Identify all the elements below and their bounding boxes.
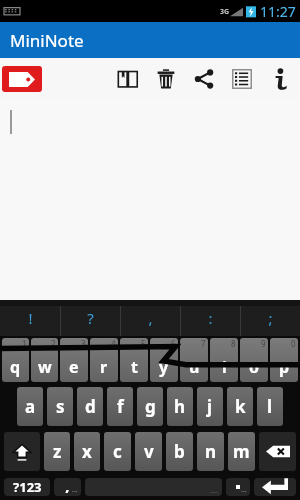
button[interactable]: Delete xyxy=(152,62,180,96)
button[interactable]: f xyxy=(107,387,133,426)
button[interactable]: ! xyxy=(0,300,60,336)
staticText: w xyxy=(38,356,52,378)
button[interactable]: Enter xyxy=(254,478,296,496)
button[interactable]: b xyxy=(166,432,193,471)
staticText: e xyxy=(69,356,79,378)
button[interactable]: List xyxy=(228,62,256,96)
staticText: b xyxy=(174,440,185,463)
staticText: 4 xyxy=(111,338,116,349)
staticText: , xyxy=(148,308,153,328)
staticText: v xyxy=(144,440,154,463)
button[interactable]: Info xyxy=(266,62,294,96)
button[interactable]: n xyxy=(197,432,224,471)
button[interactable]: ?123 xyxy=(4,478,50,496)
staticText: x xyxy=(82,440,92,463)
staticText: t xyxy=(131,356,138,378)
staticText: r xyxy=(100,356,108,378)
button[interactable]: 5 xyxy=(120,338,148,382)
staticText: m xyxy=(233,440,250,463)
staticText: , xyxy=(65,478,70,493)
staticText: 11:27 xyxy=(260,2,296,21)
button[interactable]: m xyxy=(228,432,255,471)
staticText: 9 xyxy=(261,338,266,349)
button[interactable]: Share xyxy=(190,62,218,96)
button[interactable]: 1 xyxy=(2,338,29,382)
button[interactable]: : xyxy=(181,300,240,336)
staticText: 3 xyxy=(81,338,86,349)
button[interactable]: z xyxy=(44,432,70,471)
staticText: 0 xyxy=(291,338,296,349)
staticText: 8 xyxy=(231,338,236,349)
button[interactable]: 8 xyxy=(210,338,238,382)
button[interactable]: 6 xyxy=(150,338,178,382)
button[interactable]: j xyxy=(197,387,223,426)
staticText: l xyxy=(267,395,273,418)
staticText: o xyxy=(249,356,260,378)
staticText: ___ xyxy=(210,486,218,494)
staticText: ... xyxy=(241,485,247,495)
button[interactable]: Tag xyxy=(2,66,42,92)
button[interactable]: a xyxy=(17,387,43,426)
staticText: q xyxy=(10,356,21,378)
staticText: 3G xyxy=(220,7,230,17)
button[interactable]: 2 xyxy=(31,338,58,382)
staticText: d xyxy=(85,395,96,418)
staticText: i xyxy=(222,356,227,378)
staticText: 7 xyxy=(201,338,206,349)
button[interactable]: Shift xyxy=(4,432,40,471)
button[interactable]: c xyxy=(104,432,131,471)
button[interactable]: d xyxy=(77,387,103,426)
staticText: 5 xyxy=(141,338,146,349)
button[interactable]: , xyxy=(54,478,81,496)
staticText: j xyxy=(207,395,213,418)
button[interactable]: 0 xyxy=(270,338,298,382)
staticText: s xyxy=(56,395,65,418)
button[interactable]: 9 xyxy=(240,338,268,382)
staticText: ?123 xyxy=(13,478,42,496)
staticText: : xyxy=(208,308,213,328)
button[interactable]: 4 xyxy=(90,338,118,382)
button[interactable]: Notebook xyxy=(114,62,142,96)
staticText: MiniNote xyxy=(10,29,84,52)
staticText: 2 xyxy=(51,338,56,349)
staticText: 1 xyxy=(22,338,27,349)
button[interactable]: s xyxy=(47,387,73,426)
staticText: ... xyxy=(72,485,78,495)
staticText: u xyxy=(189,356,200,378)
staticText: a xyxy=(25,395,36,418)
staticText: ; xyxy=(268,308,273,328)
button[interactable]: 3 xyxy=(60,338,88,382)
staticText: g xyxy=(145,395,156,418)
button[interactable]: l xyxy=(257,387,283,426)
button[interactable]: , xyxy=(121,300,180,336)
button[interactable]: 7 xyxy=(180,338,208,382)
staticText: k xyxy=(235,395,246,418)
button[interactable]: x xyxy=(74,432,100,471)
staticText: h xyxy=(174,395,186,418)
button[interactable]: k xyxy=(227,387,253,426)
staticText: ? xyxy=(87,308,94,328)
button[interactable]: h xyxy=(167,387,193,426)
button[interactable]: Backspace xyxy=(259,432,296,471)
staticText: z xyxy=(53,440,62,463)
button[interactable]: v xyxy=(135,432,162,471)
staticText: f xyxy=(117,395,124,418)
button[interactable]: ... xyxy=(226,478,250,496)
button[interactable]: ? xyxy=(61,300,120,336)
staticText: c xyxy=(113,440,122,463)
staticText: 6 xyxy=(171,338,176,349)
staticText: y xyxy=(159,356,169,378)
button[interactable]: ; xyxy=(241,300,300,336)
staticText: p xyxy=(279,356,290,378)
staticText: ! xyxy=(28,308,33,328)
button[interactable]: g xyxy=(137,387,163,426)
staticText: n xyxy=(205,440,217,463)
